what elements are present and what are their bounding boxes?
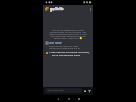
button[interactable]: A new member just joined this server, [43, 51, 93, 58]
button[interactable]: Send message [45, 88, 82, 93]
staticText: say hi and welcome them! [52, 54, 81, 57]
staticText: user name [49, 41, 62, 44]
button[interactable]: user name [43, 41, 93, 51]
staticText: This is the beginning of your conversati… [48, 28, 88, 39]
staticText: lorem ipsum dolor sit amet [49, 45, 79, 48]
button[interactable]: Home [66, 96, 72, 102]
button[interactable]: Recent apps [76, 96, 82, 102]
button[interactable]: More options [88, 7, 92, 11]
button[interactable]: Send a gift [83, 89, 87, 93]
staticText: consectetur adipiscing elit et [49, 47, 80, 50]
staticText: appBlocks [50, 7, 64, 11]
button[interactable]: Send message [87, 89, 91, 93]
staticText: Send message [48, 89, 64, 92]
button[interactable]: Back [55, 96, 61, 102]
staticText: A new member just joined this server, [49, 51, 90, 54]
staticText: 1 Member [52, 9, 64, 12]
button[interactable]: appBlocks [43, 5, 93, 12]
